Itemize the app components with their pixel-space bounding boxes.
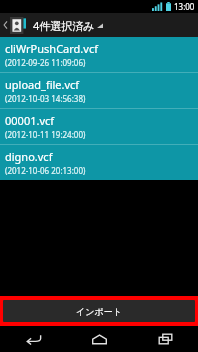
button[interactable]: インポート [3, 300, 195, 322]
staticText: 00001.vcf [5, 113, 55, 128]
staticText: 13:00 [174, 1, 195, 12]
button[interactable]: 00001.vcf [0, 109, 198, 144]
staticText: (2012-10-06 20:13:00) [5, 165, 86, 176]
staticText: upload_file.vcf [5, 77, 80, 92]
button[interactable]: Home [66, 326, 132, 352]
staticText: 4件選択済み [33, 18, 95, 33]
staticText: cliWrPushCard.vcf [5, 41, 98, 56]
staticText: インポート [76, 306, 122, 317]
button[interactable]: Recents [132, 326, 198, 352]
button[interactable]: digno.vcf [0, 145, 198, 180]
staticText: digno.vcf [5, 149, 53, 164]
button[interactable]: Back [0, 326, 66, 352]
button[interactable]: upload_file.vcf [0, 73, 198, 108]
other: Up [2, 19, 9, 31]
button[interactable]: cliWrPushCard.vcf [0, 37, 198, 72]
staticText: (2012-10-03 14:56:38) [5, 93, 86, 104]
staticText: (2012-09-26 11:09:06) [5, 57, 86, 68]
other: Dropdown [97, 22, 103, 28]
button[interactable]: Up [0, 13, 198, 37]
staticText: (2012-10-11 19:24:00) [5, 129, 86, 140]
